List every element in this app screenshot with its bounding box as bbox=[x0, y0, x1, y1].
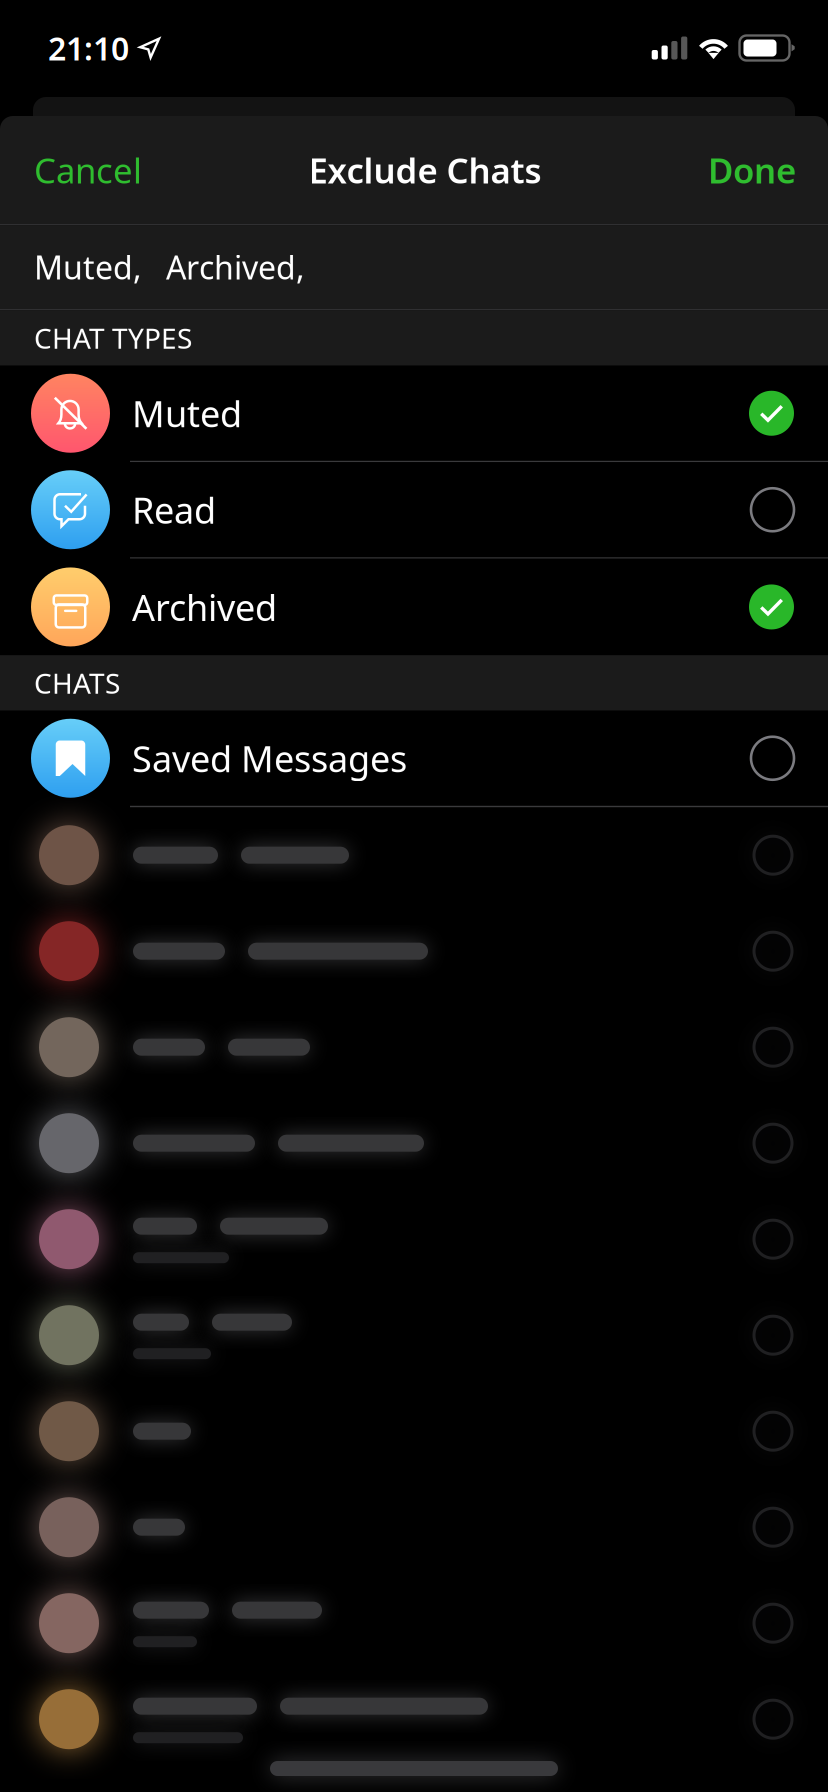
staticText: Cancel bbox=[34, 147, 142, 193]
staticText: Muted, Archived, bbox=[34, 246, 305, 288]
staticText: Read bbox=[132, 486, 216, 534]
staticText: CHAT TYPES bbox=[34, 319, 192, 357]
staticText: 21:10 bbox=[48, 27, 129, 69]
staticText: Archived bbox=[132, 583, 277, 631]
staticText: Muted bbox=[132, 389, 242, 437]
button[interactable]: Cancel bbox=[0, 116, 164, 224]
staticText: Saved Messages bbox=[132, 734, 407, 782]
staticText: Done bbox=[708, 147, 796, 193]
button[interactable]: Muted bbox=[0, 366, 828, 462]
staticText: Exclude Chats bbox=[308, 147, 541, 193]
staticText: CHATS bbox=[34, 664, 120, 702]
button[interactable]: Archived bbox=[0, 559, 828, 655]
button[interactable]: Read bbox=[0, 462, 828, 559]
button[interactable]: Saved Messages bbox=[0, 711, 828, 807]
button[interactable]: Done bbox=[686, 116, 828, 224]
